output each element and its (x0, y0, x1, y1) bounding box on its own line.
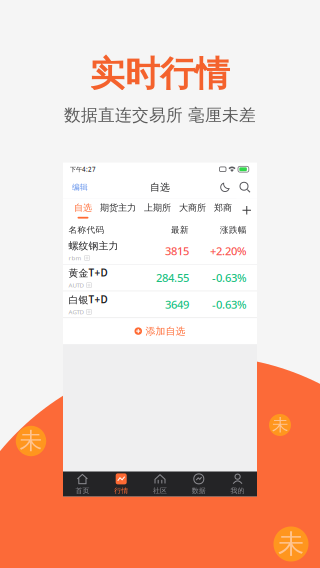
button[interactable]: 郑商 (210, 198, 236, 222)
button[interactable]: 自选 (70, 198, 96, 222)
staticText: +2.20% (210, 243, 247, 259)
staticText: 社区 (153, 486, 167, 495)
staticText: 数据直连交易所 毫厘未差 (64, 105, 256, 126)
staticText: 期货主力 (100, 202, 136, 213)
staticText: 数据 (192, 486, 206, 495)
button[interactable]: 首页 (63, 471, 102, 496)
button[interactable]: 数据 (179, 471, 218, 496)
staticText: 自选 (150, 181, 170, 193)
button[interactable]: Night mode (215, 176, 235, 198)
button[interactable]: Add category (236, 198, 257, 222)
staticText: 上期所 (144, 202, 171, 213)
button[interactable]: 黄金T+D (63, 265, 257, 291)
button[interactable]: 白银T+D (63, 291, 257, 317)
staticText: 3649 (165, 297, 189, 312)
staticText: 大商所 (179, 202, 206, 213)
button[interactable]: Search (235, 176, 255, 198)
button[interactable]: 大商所 (175, 198, 210, 222)
staticText: 我的 (231, 486, 245, 495)
staticText: 螺纹钢主力 (68, 240, 118, 252)
staticText: 3815 (165, 243, 189, 259)
staticText: 未 (272, 415, 288, 435)
staticText: 添加自选 (145, 325, 185, 337)
staticText: 未 (278, 527, 304, 560)
button[interactable]: 螺纹钢主力 (63, 238, 257, 264)
staticText: AUTD (68, 281, 83, 289)
staticText: 行情 (114, 486, 128, 495)
staticText: 最新 (171, 225, 189, 235)
button[interactable]: 添加自选 (63, 318, 257, 344)
staticText: 自选 (74, 202, 92, 213)
staticText: 首页 (75, 486, 89, 495)
staticText: 白银T+D (68, 293, 107, 306)
button[interactable]: 上期所 (140, 198, 175, 222)
staticText: -0.63% (212, 270, 247, 285)
button[interactable]: 社区 (141, 471, 179, 496)
button[interactable]: 期货主力 (96, 198, 140, 222)
staticText: 名称代码 (68, 225, 104, 235)
button[interactable]: 我的 (218, 471, 257, 496)
button[interactable]: 行情 (102, 471, 141, 496)
staticText: 黄金T+D (68, 266, 107, 279)
staticText: 下午4:27 (70, 165, 96, 173)
staticText: 未 (19, 427, 42, 455)
staticText: 郑商 (214, 202, 232, 213)
staticText: rbm (68, 254, 81, 262)
staticText: 涨跌幅 (220, 225, 247, 235)
staticText: 284.55 (156, 270, 189, 285)
staticText: -0.63% (212, 297, 247, 312)
staticText: 实时行情 (90, 52, 230, 96)
button[interactable]: 编辑 (65, 176, 95, 198)
staticText: 编辑 (72, 182, 88, 192)
staticText: AGTD (68, 308, 83, 316)
